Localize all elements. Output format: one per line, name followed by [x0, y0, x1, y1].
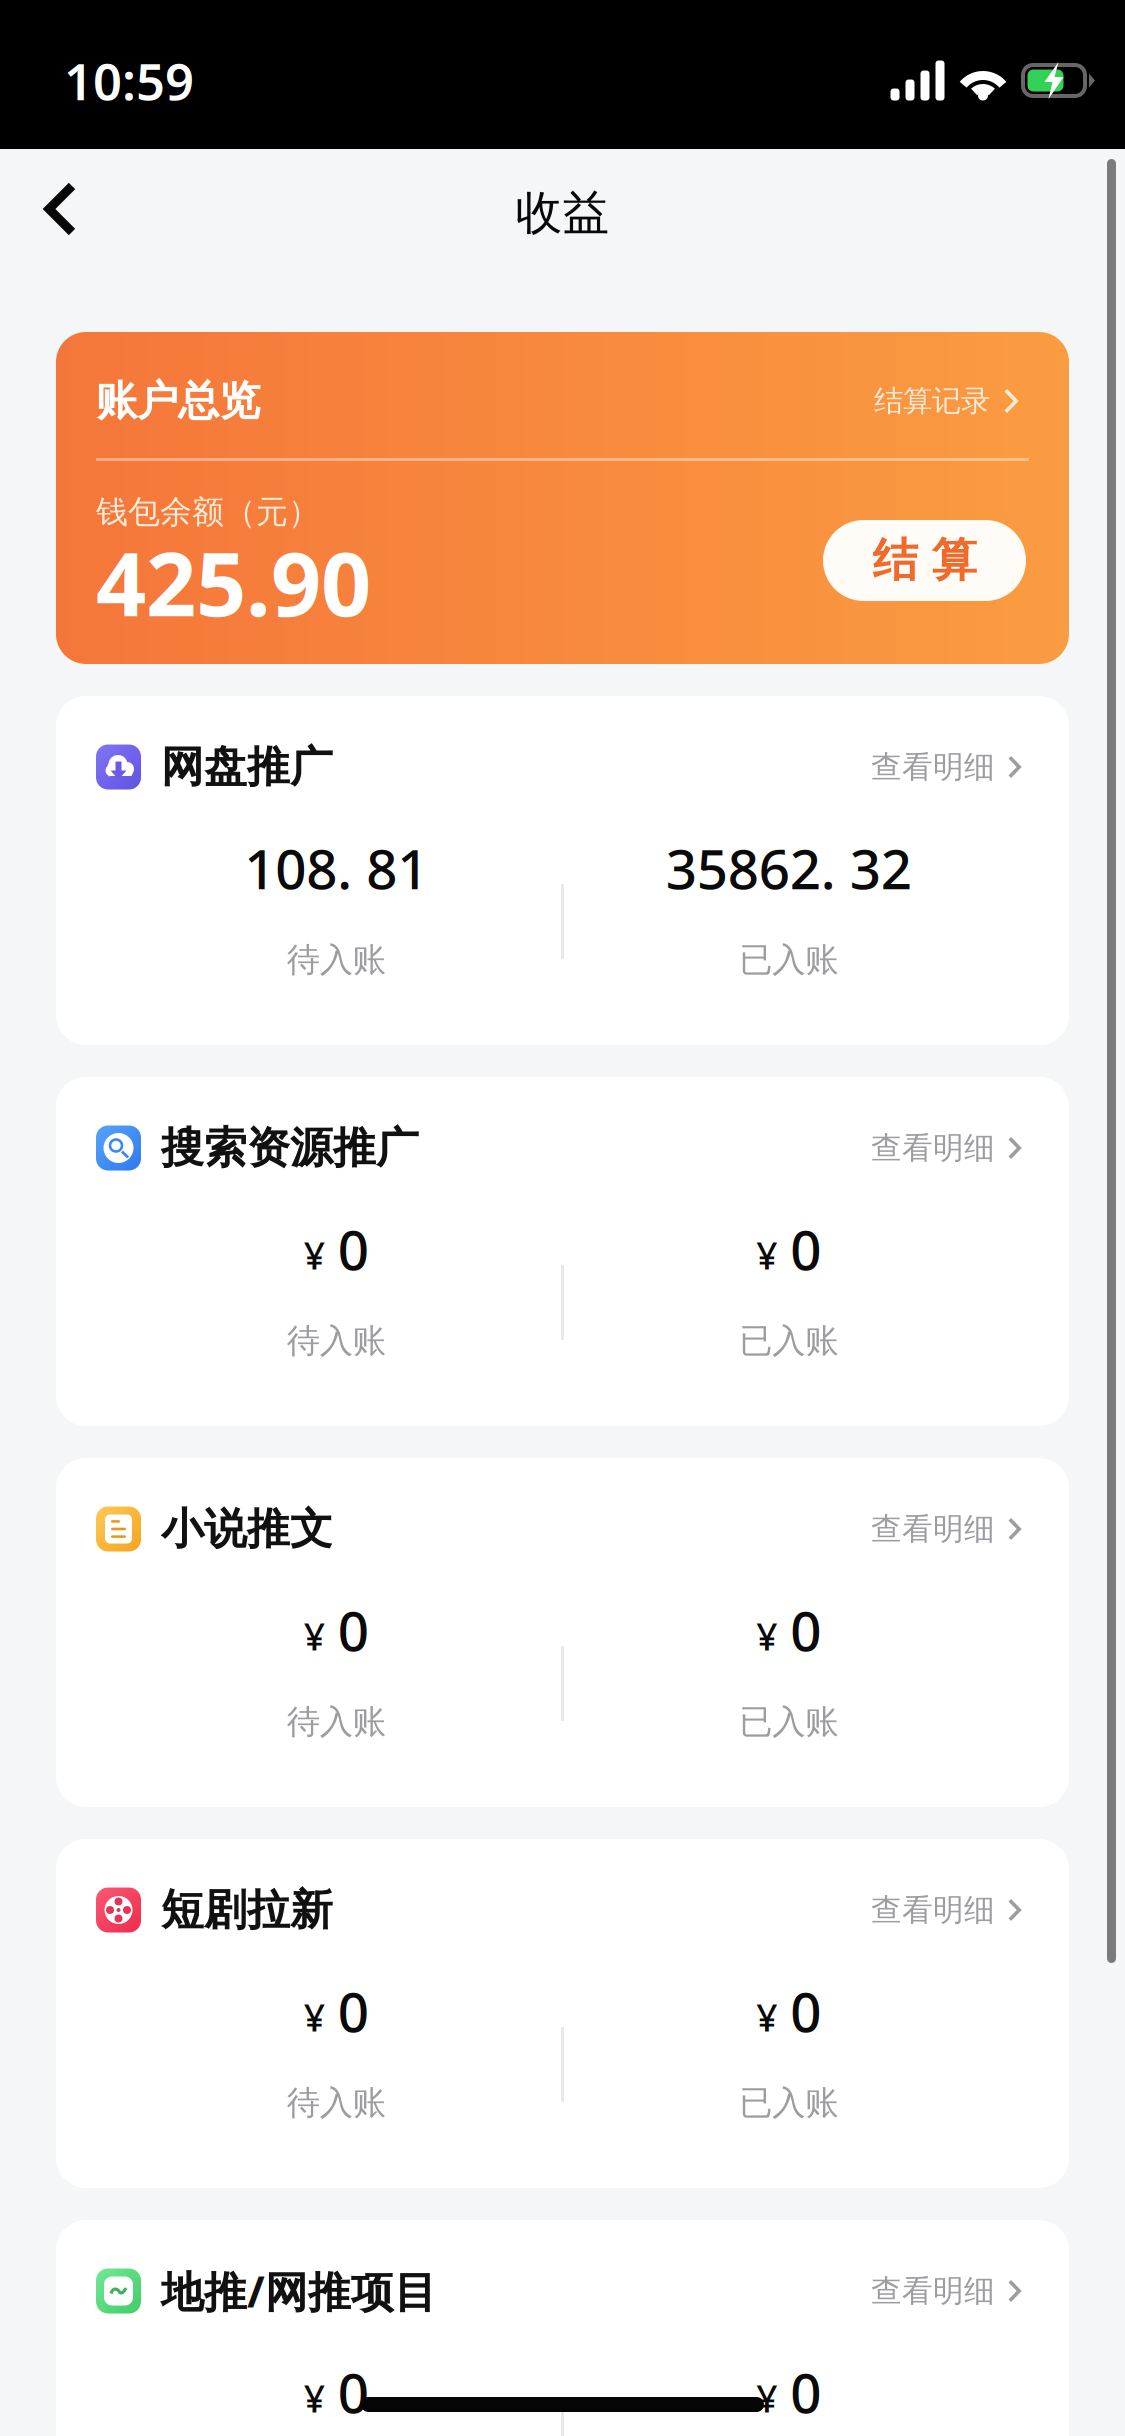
staticText: 短剧拉新	[161, 1884, 333, 1936]
staticText: ¥	[304, 1992, 325, 2042]
staticText: 0	[790, 1594, 821, 1666]
staticText: ¥	[756, 1992, 777, 2042]
staticText: ¥	[304, 2373, 325, 2423]
button[interactable]: 地推/网推项目	[56, 2220, 1069, 2316]
staticText: ¥	[756, 1230, 777, 1280]
staticText: 已入账	[739, 939, 838, 980]
staticText: 已入账	[739, 1701, 838, 1742]
staticText: 查看明细	[871, 1891, 995, 1929]
staticText: 35862. 32	[666, 832, 912, 904]
staticText: ¥	[756, 2373, 777, 2423]
staticText: 108. 81	[244, 832, 428, 904]
button[interactable]: 搜索资源推广	[56, 1077, 1069, 1173]
button[interactable]: 网盘推广	[56, 696, 1069, 792]
staticText: ¥	[304, 1230, 325, 1280]
staticText: 查看明细	[871, 748, 995, 786]
staticText: 查看明细	[871, 1129, 995, 1167]
staticText: 地推/网推项目	[161, 2263, 437, 2319]
staticText: 已入账	[739, 2082, 838, 2123]
staticText: 小说推文	[161, 1503, 333, 1555]
staticText: 0	[338, 1975, 369, 2047]
staticText: 钱包余额（元）	[96, 492, 320, 532]
staticText: 已入账	[739, 1320, 838, 1361]
button[interactable]: 结算记录	[874, 378, 1018, 424]
button[interactable]: Back	[0, 149, 115, 332]
button[interactable]: 结 算	[823, 520, 1026, 601]
staticText: 查看明细	[871, 1510, 995, 1548]
staticText: 10:59	[64, 47, 194, 114]
staticText: 425.90	[96, 524, 371, 640]
staticText: 查看明细	[871, 2272, 995, 2310]
staticText: 网盘推广	[161, 741, 333, 793]
button[interactable]: 短剧拉新	[56, 1839, 1069, 1935]
staticText: 0	[790, 1213, 821, 1285]
staticText: 结 算	[872, 533, 976, 588]
button[interactable]: 小说推文	[56, 1458, 1069, 1554]
staticText: 搜索资源推广	[161, 1122, 419, 1174]
staticText: 待入账	[287, 2082, 386, 2123]
staticText: 待入账	[287, 939, 386, 980]
staticText: ¥	[756, 1611, 777, 1661]
staticText: 待入账	[287, 1320, 386, 1361]
staticText: 0	[338, 1213, 369, 1285]
staticText: 0	[790, 2356, 821, 2428]
staticText: 账户总览	[96, 376, 260, 426]
staticText: 待入账	[287, 1701, 386, 1742]
staticText: ¥	[304, 1611, 325, 1661]
staticText: 0	[338, 2356, 369, 2428]
staticText: 0	[338, 1594, 369, 1666]
staticText: 收益	[515, 184, 609, 242]
staticText: 0	[790, 1975, 821, 2047]
staticText: 结算记录	[874, 383, 990, 419]
